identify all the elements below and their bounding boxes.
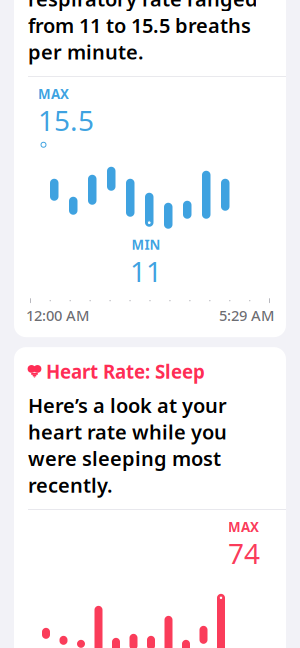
staticText: MIN [131, 236, 160, 253]
staticText: 12:00 AM [26, 306, 89, 325]
staticText: While you were sleeping, your respirator… [28, 0, 258, 65]
staticText: Heart Rate: Sleep [46, 359, 205, 384]
staticText: MAX [38, 85, 69, 103]
staticText: 5:29 AM [219, 306, 274, 325]
staticText: 74 [228, 535, 260, 572]
staticText: Here’s a look at your heart rate while y… [28, 392, 227, 498]
staticText: 15.5 [38, 102, 94, 139]
staticText: MAX [228, 518, 259, 536]
staticText: 11 [130, 252, 162, 290]
